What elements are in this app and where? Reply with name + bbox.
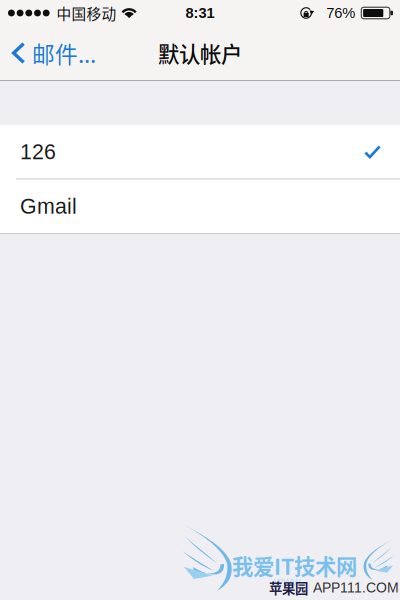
staticText: 默认帐户 (158, 38, 242, 68)
staticText: 邮件... (32, 37, 96, 69)
button[interactable]: 邮件... (0, 31, 106, 75)
staticText: www. (274, 575, 303, 588)
staticText: 我爱IT技术网 (232, 550, 357, 581)
button[interactable]: 126 (0, 125, 400, 178)
staticText: 8:31 (185, 5, 214, 21)
staticText: 126 (20, 140, 56, 164)
button[interactable]: Gmail (0, 179, 400, 233)
staticText: 苹果园 (269, 578, 308, 597)
staticText: 中国移动 (57, 2, 117, 24)
staticText: Gmail (20, 194, 77, 218)
staticText: APP111.COM (313, 580, 399, 595)
staticText: 76% (326, 5, 355, 21)
